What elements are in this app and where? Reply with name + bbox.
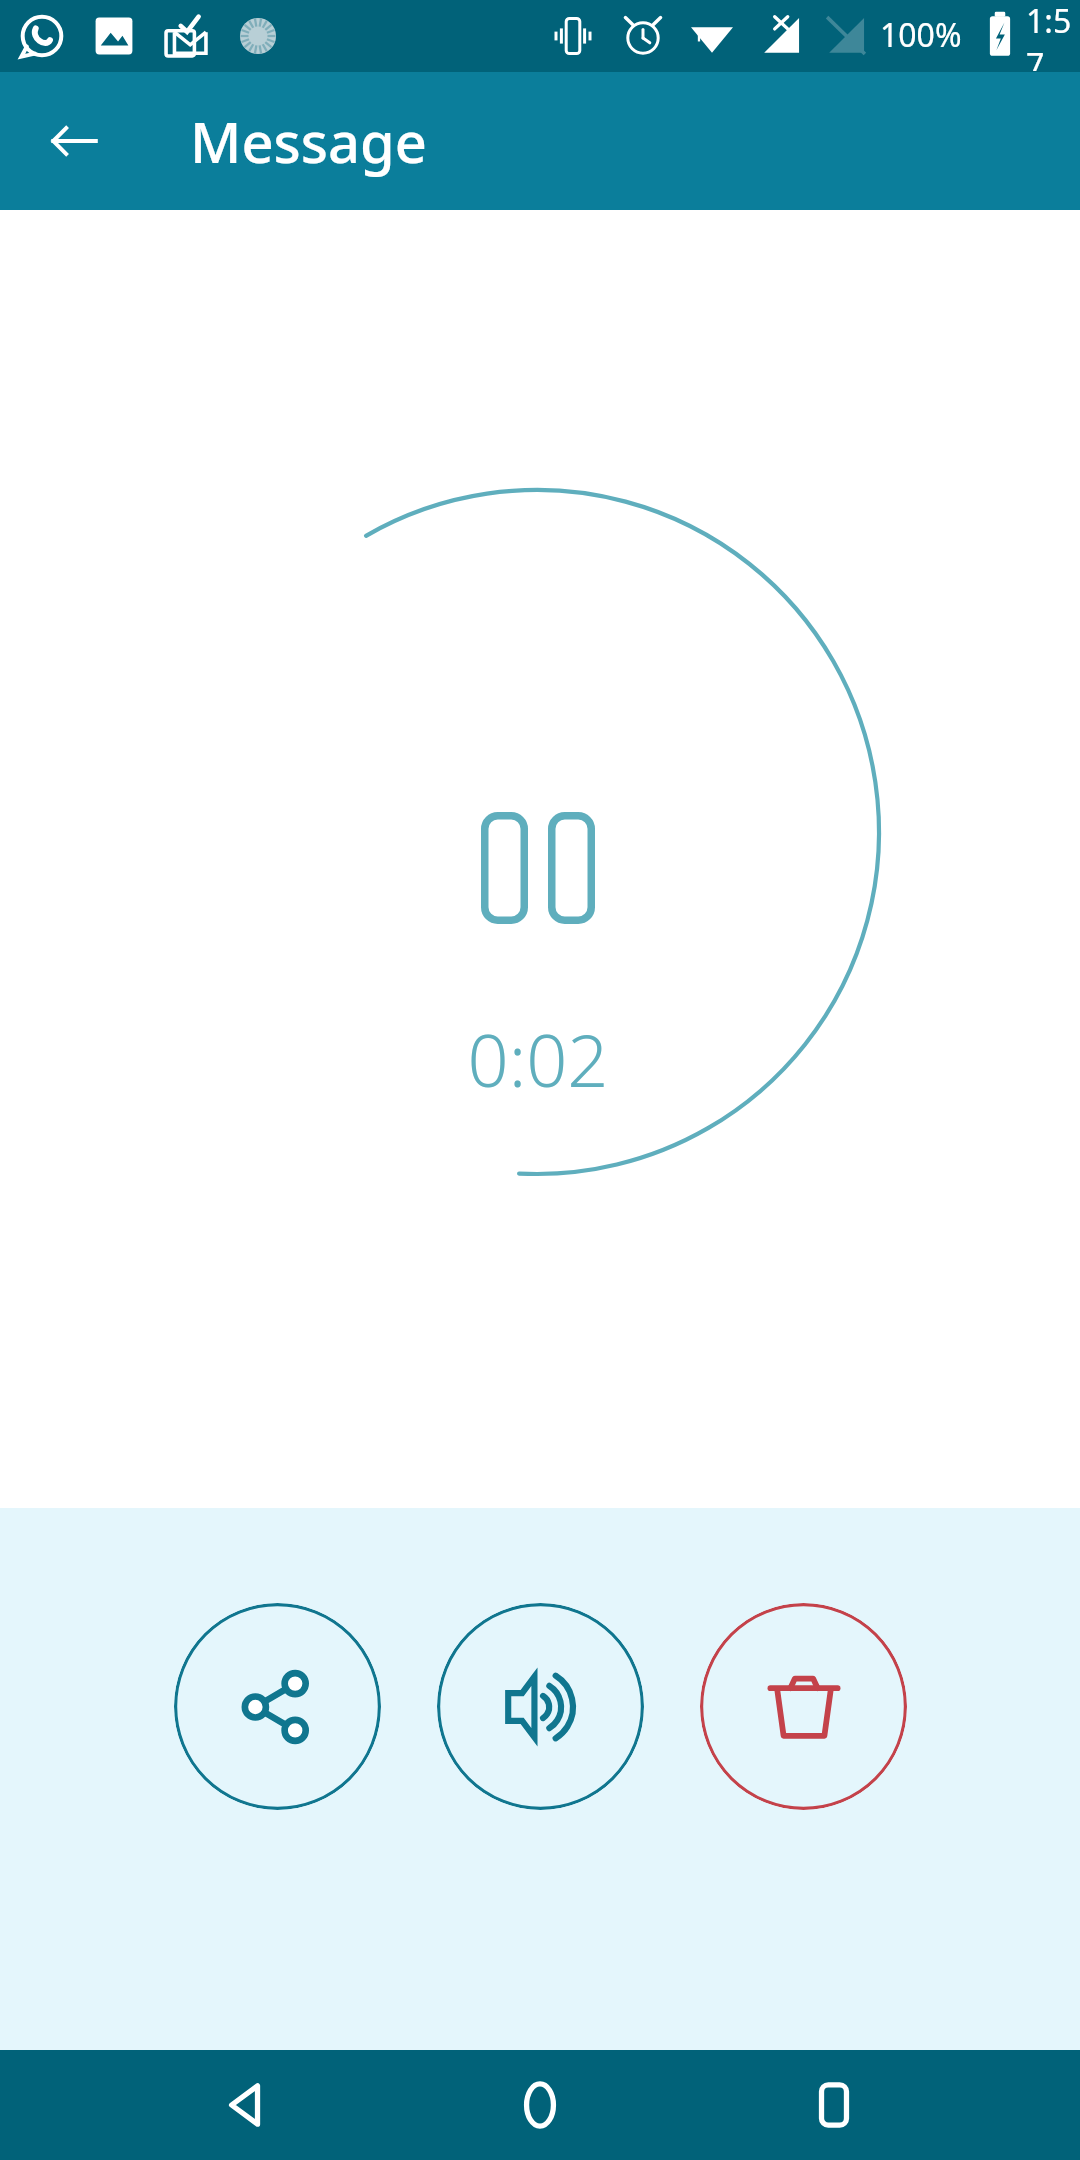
button[interactable]: Home bbox=[492, 2057, 588, 2153]
staticText: 1:57 bbox=[1026, 0, 1080, 71]
button[interactable]: Play through speaker bbox=[437, 1603, 644, 1810]
button[interactable]: Back bbox=[26, 93, 122, 189]
staticText: Message bbox=[190, 103, 427, 179]
button[interactable]: Delete bbox=[700, 1603, 907, 1810]
button[interactable]: Recents bbox=[786, 2057, 882, 2153]
button[interactable]: Back bbox=[198, 2057, 294, 2153]
button[interactable]: Share bbox=[174, 1603, 381, 1810]
staticText: 100% bbox=[880, 13, 962, 57]
staticText: 0:02 bbox=[338, 1010, 738, 1108]
button[interactable]: Pause bbox=[451, 773, 625, 963]
